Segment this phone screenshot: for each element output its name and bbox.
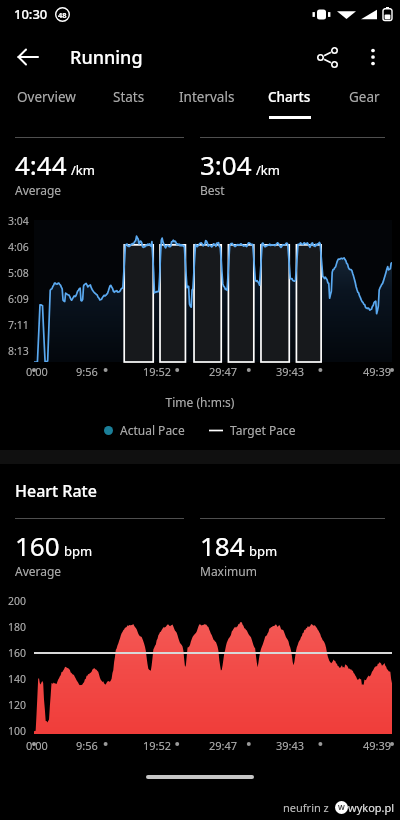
staticText: 3:04: [8, 214, 29, 228]
staticText: 19:52: [143, 364, 172, 379]
staticText: 9:56: [76, 738, 98, 753]
staticText: Average: [15, 182, 62, 198]
staticText: 29:47: [209, 738, 238, 753]
staticText: Overview: [17, 88, 76, 106]
staticText: Gear: [349, 88, 380, 106]
staticText: 160: [15, 528, 60, 563]
staticText: 6:09: [8, 292, 29, 306]
staticText: neufrin z: [283, 800, 335, 815]
button[interactable]: More options: [350, 34, 396, 80]
staticText: W: [338, 803, 345, 813]
staticText: Maximum: [200, 563, 257, 579]
staticText: 200: [8, 594, 27, 608]
staticText: /km: [256, 161, 280, 179]
staticText: 39:43: [276, 738, 305, 753]
button[interactable]: Intervals: [164, 86, 250, 130]
staticText: Average: [15, 563, 62, 579]
staticText: 5:08: [8, 266, 29, 280]
staticText: Time (h:m:s): [0, 394, 400, 410]
staticText: 19:52: [143, 738, 172, 753]
staticText: 120: [8, 698, 27, 712]
staticText: /km: [71, 161, 95, 179]
button[interactable]: Back: [4, 33, 52, 81]
staticText: 4:44: [15, 147, 67, 182]
button[interactable]: Stats: [93, 86, 164, 130]
staticText: 160: [8, 646, 27, 660]
staticText: 39:43: [276, 364, 305, 379]
staticText: wykop.pl: [348, 800, 395, 815]
staticText: 100: [8, 724, 27, 738]
staticText: 7:11: [8, 318, 29, 332]
staticText: 9:56: [76, 364, 98, 379]
staticText: 0:00: [26, 738, 48, 753]
staticText: Heart Rate: [15, 480, 97, 502]
staticText: 184: [200, 528, 245, 563]
button[interactable]: Gear: [329, 86, 400, 130]
staticText: 29:47: [209, 364, 238, 379]
staticText: Target Pace: [230, 422, 296, 438]
staticText: 8:13: [8, 344, 29, 358]
staticText: Actual Pace: [120, 422, 185, 438]
button[interactable]: Share: [304, 34, 350, 80]
staticText: 4:06: [8, 240, 29, 254]
staticText: 49:39: [363, 364, 392, 379]
staticText: 180: [8, 620, 27, 634]
staticText: 10:30: [14, 5, 48, 23]
staticText: Intervals: [179, 88, 235, 106]
button[interactable]: Charts: [250, 86, 329, 130]
staticText: Best: [200, 182, 225, 198]
staticText: bpm: [64, 542, 93, 560]
staticText: Charts: [268, 88, 311, 106]
staticText: bpm: [249, 542, 278, 560]
staticText: 140: [8, 672, 27, 686]
staticText: 3:04: [200, 147, 252, 182]
staticText: 0:00: [26, 364, 48, 379]
button[interactable]: Overview: [0, 86, 93, 130]
staticText: 48: [58, 10, 67, 20]
staticText: Stats: [113, 88, 145, 106]
staticText: 49:39: [363, 738, 392, 753]
staticText: Running: [70, 45, 143, 70]
